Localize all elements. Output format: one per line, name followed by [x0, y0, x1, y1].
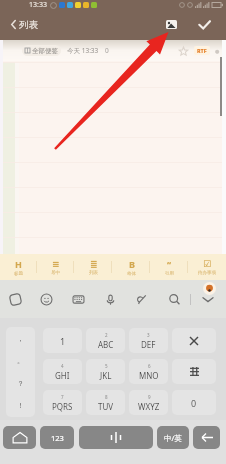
staticText: 。 [17, 356, 24, 365]
staticText: ≣ [90, 259, 98, 269]
button[interactable]: ， [6, 327, 35, 417]
button[interactable]: Enter [193, 426, 220, 449]
button[interactable]: Hide keyboard [190, 280, 226, 318]
button[interactable]: Home [3, 426, 36, 449]
staticText: 居中 [51, 270, 60, 276]
button[interactable]: 全部便签 [25, 45, 58, 56]
button[interactable]: Assistant [203, 282, 216, 295]
staticText: GHI [55, 370, 70, 381]
button[interactable]: Sogou [0, 280, 31, 318]
button[interactable]: Symbols [172, 359, 216, 384]
staticText: PQRS [52, 401, 73, 412]
staticText: 标题 [14, 271, 23, 277]
button[interactable]: ≣ [74, 254, 112, 280]
staticText: 3 [147, 332, 150, 338]
staticText: H [15, 258, 22, 270]
button[interactable]: “ [150, 254, 188, 280]
staticText: 引用 [165, 271, 174, 277]
button[interactable]: Keyboard layout [62, 280, 94, 318]
button[interactable]: 123 [40, 426, 74, 449]
button[interactable]: ≡ [37, 254, 74, 280]
staticText: ABC [98, 339, 114, 350]
button[interactable]: Favourite [176, 44, 190, 58]
staticText: MNO [139, 370, 159, 381]
staticText: 0 [105, 46, 109, 55]
staticText: “ [167, 258, 172, 270]
staticText: ？ [17, 379, 24, 388]
staticText: ● [215, 48, 220, 54]
button[interactable]: Backspace [172, 328, 216, 353]
staticText: 2 [105, 332, 108, 338]
button[interactable]: RTF [197, 47, 207, 54]
button[interactable]: Handwriting [126, 280, 158, 318]
staticText: 0 [191, 397, 197, 409]
button[interactable]: Insert image [157, 15, 186, 34]
button[interactable]: 8 [86, 390, 125, 415]
button[interactable]: B [112, 254, 150, 280]
staticText: TUV [98, 401, 114, 412]
staticText: ☑ [203, 259, 212, 269]
button[interactable]: Space [79, 426, 153, 449]
staticText: 中/英 [164, 433, 182, 443]
button[interactable]: 9 [129, 390, 168, 415]
button[interactable]: Search [158, 280, 190, 318]
staticText: 待办事项 [198, 270, 216, 276]
staticText: ≡ [52, 259, 60, 269]
staticText: 列表 [89, 270, 98, 276]
staticText: 9 [148, 394, 151, 400]
staticText: 7 [61, 394, 64, 400]
staticText: 列表 [19, 19, 38, 31]
staticText: B [129, 258, 135, 270]
button[interactable]: Voice input [94, 280, 126, 318]
button[interactable]: ☑ [188, 254, 226, 280]
button[interactable]: 列表 [6, 16, 43, 33]
staticText: ， [17, 334, 24, 343]
button[interactable]: 6 [129, 359, 168, 384]
staticText: ！ [17, 401, 24, 410]
button[interactable]: Done [189, 15, 219, 34]
button[interactable]: 3 [129, 328, 168, 353]
staticText: 4 [61, 363, 64, 369]
staticText: WXYZ [138, 401, 160, 412]
button[interactable]: 5 [86, 359, 125, 384]
button[interactable]: 4 [43, 359, 82, 384]
staticText: RTF [197, 47, 207, 54]
staticText: JKL [100, 370, 112, 381]
staticText: 1 [60, 335, 66, 347]
staticText: 123 [51, 433, 64, 443]
staticText: 格体 [127, 271, 136, 277]
staticText: 全部便签 [32, 47, 58, 55]
staticText: 今天 13:33 [67, 46, 99, 55]
button[interactable]: 2 [86, 328, 125, 353]
button[interactable]: H [0, 254, 37, 280]
button[interactable]: Emoji [31, 280, 62, 318]
staticText: 5 [105, 363, 108, 369]
staticText: 8 [105, 394, 108, 400]
staticText: 6 [148, 363, 151, 369]
button[interactable]: 中/英 [157, 426, 189, 449]
button[interactable]: 7 [43, 390, 82, 415]
button[interactable]: 1 [43, 328, 82, 353]
staticText: DEF [141, 339, 156, 350]
staticText: 13:33 [29, 0, 47, 10]
button[interactable]: 0 [172, 390, 216, 415]
